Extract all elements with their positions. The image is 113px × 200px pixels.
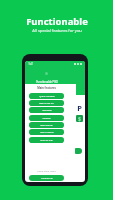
button[interactable]: Bills & top up <box>29 100 64 106</box>
button[interactable]: Scan to pay <box>29 137 64 143</box>
staticText: Main features <box>37 86 56 90</box>
staticText: Scan to pay <box>40 139 53 142</box>
button[interactable]: Savings <box>29 115 64 121</box>
staticText: Need more help? <box>37 170 56 173</box>
staticText: Contact us <box>41 177 53 180</box>
staticText: $ <box>78 116 81 122</box>
staticText: Rewards <box>42 109 52 112</box>
button[interactable]: Split the bill <box>29 122 64 128</box>
button[interactable]: More <box>75 148 82 154</box>
staticText: Send money <box>40 131 54 134</box>
button[interactable]: Rewards <box>29 107 64 113</box>
staticText: Split the bill <box>40 124 53 127</box>
staticText: 9:41 <box>28 62 34 66</box>
button[interactable]: Send money <box>29 129 64 135</box>
staticText: Quick transfer <box>39 95 55 98</box>
staticText: P <box>77 103 82 112</box>
button[interactable]: PayPal <box>75 103 83 112</box>
staticText: Functionable <box>26 15 88 28</box>
button[interactable]: Wallet <box>76 115 83 122</box>
staticText: Savings <box>42 117 51 120</box>
button[interactable]: Contact us <box>29 175 64 181</box>
staticText: Functionable PRO <box>36 80 58 84</box>
staticText: All special features for you <box>32 28 82 33</box>
staticText: Bills & top up <box>39 102 54 105</box>
button[interactable]: Quick transfer <box>29 93 64 99</box>
